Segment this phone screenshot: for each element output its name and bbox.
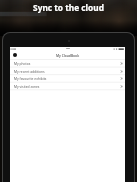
button[interactable]: My favourite exhibits xyxy=(10,74,125,82)
button[interactable]: Account xyxy=(13,53,17,57)
staticText: My CloudBook xyxy=(10,53,125,57)
staticText: My photos xyxy=(14,61,120,65)
button[interactable]: My visited zones xyxy=(10,82,125,90)
staticText: My favourite exhibits xyxy=(14,76,120,80)
staticText: Sync to the cloud xyxy=(0,2,137,13)
button[interactable]: My photos xyxy=(10,59,125,67)
staticText: My visited zones xyxy=(14,84,120,88)
staticText: My recent additions xyxy=(14,69,120,73)
button[interactable]: My recent additions xyxy=(10,67,125,75)
